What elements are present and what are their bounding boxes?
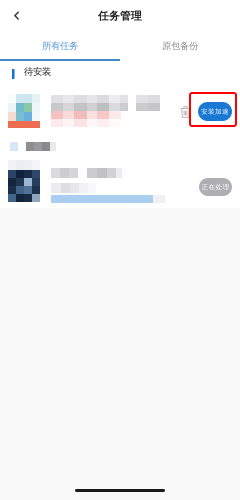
button[interactable]: 安装加速 [198,102,232,121]
staticText: 原包备份 [162,40,198,52]
staticText: 安装加速 [201,107,229,116]
staticText: 任务管理 [98,9,142,22]
button[interactable]: 正在处理 [199,178,232,196]
button[interactable]: 删除 [180,106,191,118]
button[interactable]: 所有任务 [0,34,120,58]
staticText: 正在处理 [201,183,229,191]
button[interactable]: 返回 [2,3,32,29]
staticText: 所有任务 [42,40,78,52]
button[interactable]: 原包备份 [120,34,240,58]
staticText: 待安装 [24,66,51,77]
